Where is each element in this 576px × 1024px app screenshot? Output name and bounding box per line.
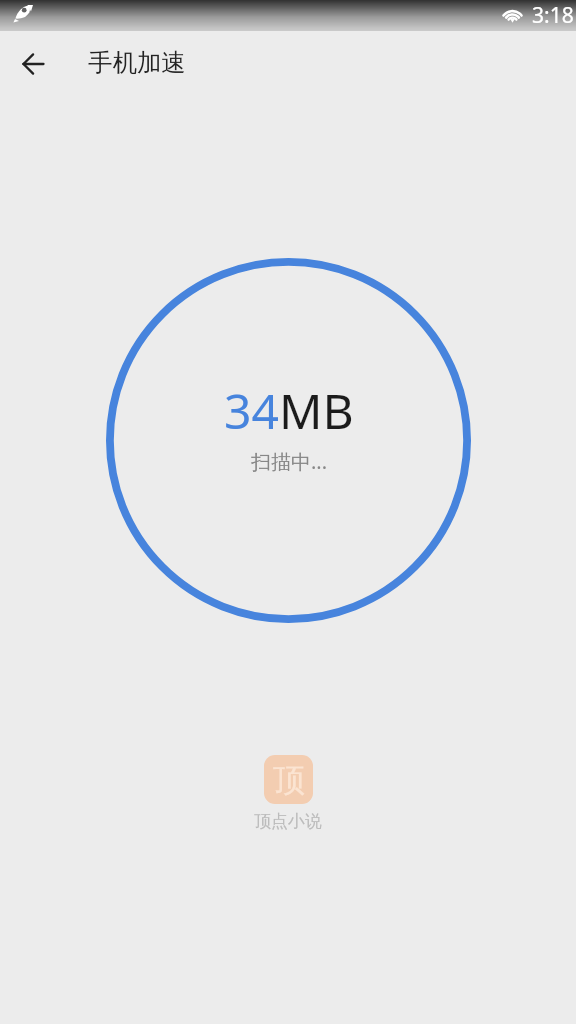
staticText: 顶点小说 bbox=[254, 811, 322, 832]
staticText: 顶 bbox=[273, 760, 305, 800]
button[interactable]: 顶 bbox=[254, 755, 322, 832]
staticText: 手机加速 bbox=[88, 47, 186, 78]
staticText: 3:18 bbox=[532, 1, 574, 30]
staticText: 34MB bbox=[224, 378, 354, 443]
button[interactable]: Back bbox=[9, 40, 57, 88]
staticText: 扫描中... bbox=[251, 448, 328, 475]
